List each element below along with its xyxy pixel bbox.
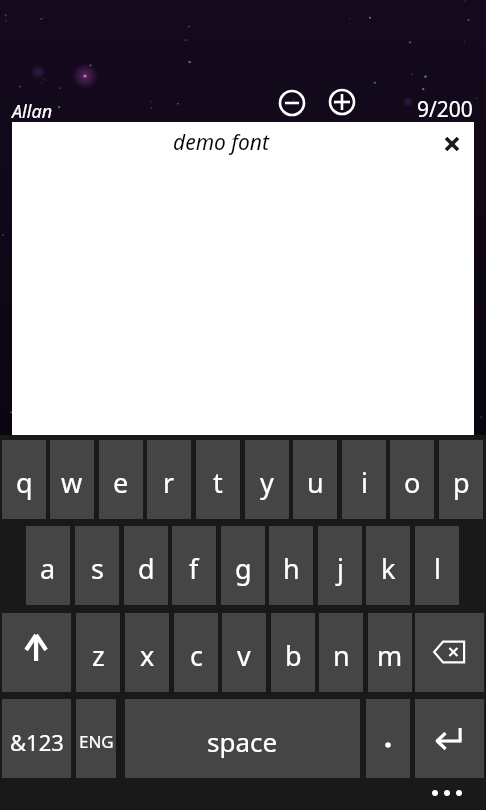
- staticText: r: [163, 464, 175, 501]
- button[interactable]: d: [124, 526, 168, 605]
- staticText: l: [434, 550, 441, 587]
- staticText: j: [337, 550, 344, 587]
- button[interactable]: l: [415, 526, 459, 605]
- staticText: space: [207, 724, 278, 759]
- button[interactable]: v: [222, 613, 266, 692]
- staticText: i: [361, 464, 368, 501]
- staticText: y: [260, 464, 274, 501]
- staticText: n: [333, 637, 350, 674]
- staticText: g: [235, 550, 252, 587]
- staticText: b: [285, 637, 302, 674]
- button[interactable]: f: [172, 526, 216, 605]
- button[interactable]: u: [293, 440, 337, 519]
- staticText: v: [237, 637, 251, 674]
- button[interactable]: a: [26, 526, 70, 605]
- staticText: z: [92, 637, 105, 674]
- staticText: t: [213, 464, 223, 501]
- staticText: q: [16, 464, 33, 501]
- button[interactable]: e: [99, 440, 143, 519]
- button[interactable]: m: [368, 613, 412, 692]
- staticText: w: [61, 464, 83, 501]
- button[interactable]: [415, 613, 484, 692]
- button[interactable]: o: [390, 440, 434, 519]
- staticText: &123: [10, 727, 64, 757]
- button[interactable]: k: [366, 526, 410, 605]
- staticText: p: [453, 464, 470, 501]
- button[interactable]: p: [439, 440, 483, 519]
- staticText: Allan: [12, 99, 53, 124]
- staticText: o: [404, 464, 421, 501]
- staticText: c: [190, 637, 203, 674]
- staticText: x: [140, 637, 155, 674]
- button[interactable]: z: [76, 613, 120, 692]
- staticText: s: [91, 550, 104, 587]
- button[interactable]: x: [125, 613, 169, 692]
- button[interactable]: &123: [2, 699, 71, 778]
- button[interactable]: g: [221, 526, 265, 605]
- button[interactable]: w: [50, 440, 94, 519]
- staticText: demo font: [173, 128, 269, 157]
- button[interactable]: c: [174, 613, 218, 692]
- button[interactable]: h: [269, 526, 313, 605]
- staticText: h: [283, 550, 300, 587]
- button[interactable]: j: [318, 526, 362, 605]
- staticText: a: [40, 550, 56, 587]
- staticText: 9/200: [417, 95, 473, 124]
- button[interactable]: s: [75, 526, 119, 605]
- button[interactable]: [2, 613, 71, 692]
- button[interactable]: q: [2, 440, 46, 519]
- staticText: u: [307, 464, 324, 501]
- button[interactable]: ENG: [76, 699, 116, 778]
- button[interactable]: space: [125, 699, 360, 778]
- button[interactable]: b: [271, 613, 315, 692]
- staticText: k: [381, 550, 396, 587]
- button[interactable]: [277, 88, 307, 118]
- staticText: e: [113, 464, 129, 501]
- staticText: f: [189, 550, 199, 587]
- staticText: m: [377, 637, 403, 674]
- button[interactable]: [327, 87, 357, 117]
- button[interactable]: r: [147, 440, 191, 519]
- button[interactable]: i: [342, 440, 386, 519]
- staticText: ENG: [79, 730, 114, 753]
- staticText: d: [138, 550, 155, 587]
- button[interactable]: [415, 699, 484, 778]
- button[interactable]: n: [319, 613, 363, 692]
- button[interactable]: y: [245, 440, 289, 519]
- button[interactable]: t: [196, 440, 240, 519]
- button[interactable]: [424, 781, 470, 805]
- button[interactable]: [366, 699, 410, 778]
- button[interactable]: [443, 135, 461, 153]
